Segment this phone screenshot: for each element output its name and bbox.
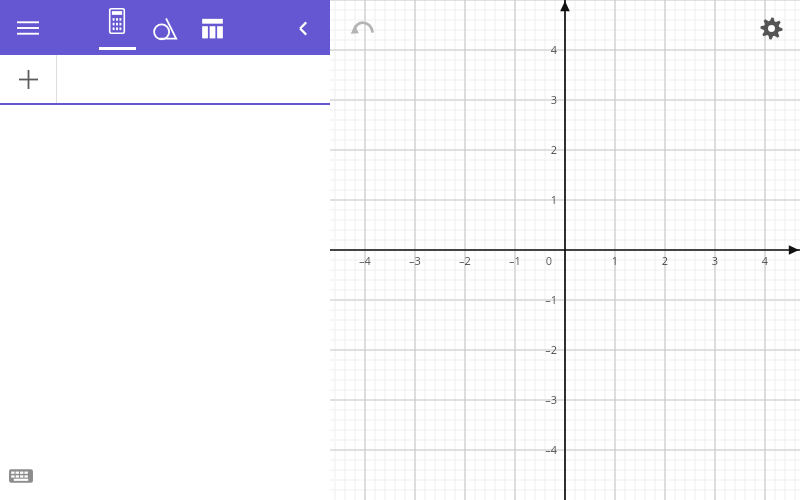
- button[interactable]: Collapse panel: [287, 12, 319, 44]
- staticText: –3: [529, 392, 557, 407]
- staticText: 3: [700, 253, 730, 268]
- staticText: –1: [529, 292, 557, 307]
- button[interactable]: Settings: [754, 11, 788, 45]
- staticText: 0: [539, 253, 559, 268]
- button[interactable]: Show keyboard: [6, 461, 36, 491]
- staticText: 3: [529, 92, 557, 107]
- staticText: 1: [529, 192, 557, 207]
- staticText: 2: [529, 142, 557, 157]
- button[interactable]: Undo: [346, 11, 380, 45]
- staticText: 4: [750, 253, 780, 268]
- button[interactable]: Algebra: [98, 5, 136, 50]
- button[interactable]: Table: [196, 12, 229, 45]
- staticText: –4: [529, 442, 557, 457]
- staticText: 1: [600, 253, 630, 268]
- staticText: –2: [529, 342, 557, 357]
- staticText: –4: [350, 253, 380, 268]
- staticText: 2: [650, 253, 680, 268]
- staticText: 4: [529, 42, 557, 57]
- button[interactable]: Menu: [12, 12, 44, 44]
- button[interactable]: Add input row: [0, 55, 56, 103]
- staticText: –1: [500, 253, 530, 268]
- staticText: –2: [450, 253, 480, 268]
- staticText: –3: [400, 253, 430, 268]
- button[interactable]: Geometry: [148, 12, 181, 45]
